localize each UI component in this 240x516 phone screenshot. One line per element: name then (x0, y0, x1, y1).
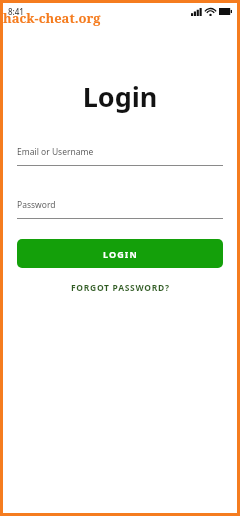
staticText: hack-cheat.org (3, 9, 101, 27)
staticText: Email or Username (17, 146, 94, 158)
staticText: Password (17, 199, 56, 211)
staticText: 8:41 (8, 6, 24, 17)
staticText: LOGIN (103, 248, 138, 260)
button[interactable]: FORGOT PASSWORD? (3, 279, 237, 297)
staticText: Login (3, 78, 237, 115)
button[interactable]: LOGIN (17, 239, 223, 268)
staticText: FORGOT PASSWORD? (71, 282, 170, 294)
